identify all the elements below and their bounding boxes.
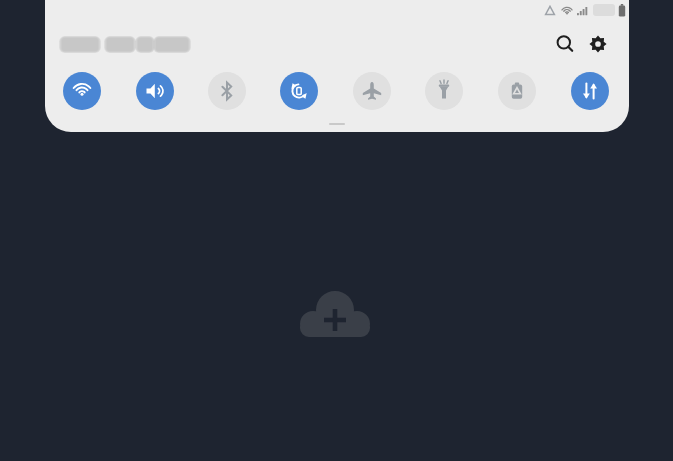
button[interactable]: Auto rotate <box>280 72 318 110</box>
button[interactable]: Mobile data <box>571 72 609 110</box>
button[interactable]: Settings <box>584 30 612 58</box>
button[interactable]: Bluetooth <box>208 72 246 110</box>
button[interactable]: Sound <box>136 72 174 110</box>
button[interactable]: Flashlight <box>425 72 463 110</box>
button[interactable]: Airplane mode <box>353 72 391 110</box>
button[interactable]: Wi-Fi <box>63 72 101 110</box>
button[interactable]: Search <box>551 30 579 58</box>
button[interactable]: Power saving <box>498 72 536 110</box>
